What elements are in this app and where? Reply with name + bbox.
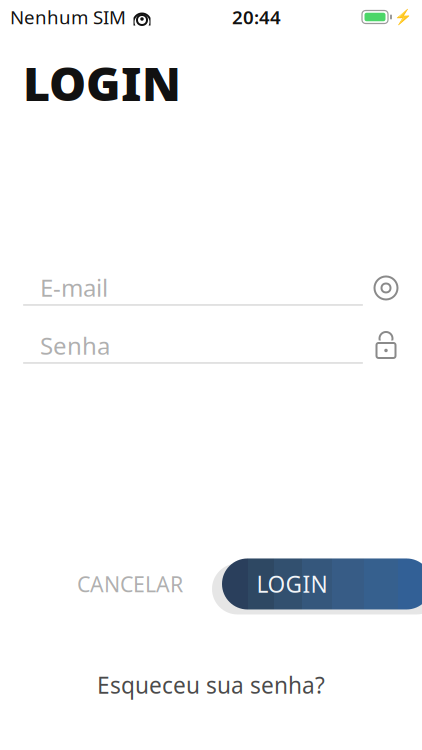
button[interactable]: LOGIN — [212, 558, 422, 609]
staticText: LOGIN — [23, 52, 181, 114]
staticText: E-mail — [40, 271, 108, 303]
staticText: Esqueceu sua senha? — [97, 670, 325, 700]
button[interactable]: CANCELAR — [59, 556, 201, 612]
staticText: Nenhum SIM — [10, 5, 126, 29]
staticText: Senha — [40, 329, 110, 361]
button[interactable]: Esqueceu sua senha? — [0, 670, 422, 700]
staticText: CANCELAR — [77, 570, 183, 598]
staticText: ⚡ — [394, 9, 412, 25]
staticText: LOGIN — [256, 569, 327, 599]
staticText: 20:44 — [232, 5, 281, 29]
